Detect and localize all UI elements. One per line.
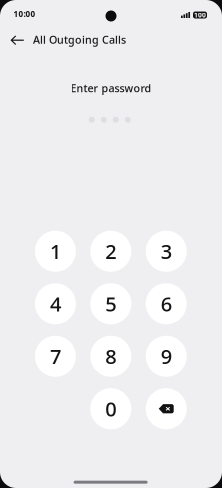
staticText: 100 [194, 11, 206, 19]
button[interactable]: Delete [146, 388, 187, 429]
staticText: 5 [105, 290, 116, 317]
staticText: 10:00 [13, 9, 35, 19]
staticText: 8 [105, 343, 116, 370]
staticText: Enter password [70, 81, 151, 95]
button[interactable]: 8 [90, 336, 131, 377]
staticText: 6 [161, 290, 172, 317]
staticText: All Outgoing Calls [33, 32, 126, 47]
button[interactable]: 4 [35, 283, 76, 324]
button[interactable]: Back [5, 27, 31, 53]
button[interactable]: 7 [35, 336, 76, 377]
button[interactable]: 5 [90, 283, 131, 324]
button[interactable]: 2 [90, 231, 131, 272]
button[interactable]: 9 [146, 336, 187, 377]
staticText: 7 [50, 343, 61, 370]
staticText: 9 [161, 343, 172, 370]
staticText: 4 [50, 290, 61, 317]
button[interactable]: 6 [146, 283, 187, 324]
button[interactable]: 1 [35, 231, 76, 272]
staticText: 0 [105, 395, 116, 422]
staticText: 2 [105, 238, 116, 265]
staticText: 3 [161, 238, 172, 265]
staticText: 1 [50, 238, 61, 265]
button[interactable]: 0 [90, 388, 131, 429]
button[interactable]: 3 [146, 231, 187, 272]
